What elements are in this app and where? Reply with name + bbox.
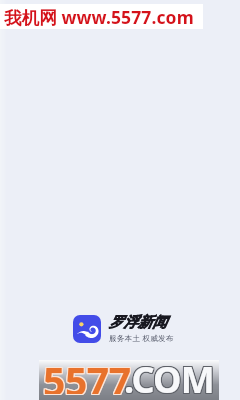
- staticText: .COM: [124, 354, 214, 394]
- staticText: .COM: [123, 354, 213, 394]
- staticText: .COM: [123, 355, 213, 395]
- staticText: .COM: [125, 354, 215, 394]
- staticText: .COM: [124, 356, 214, 396]
- staticText: 5577: [44, 354, 132, 394]
- button[interactable]: 罗浮新闻 app icon: [73, 313, 174, 343]
- staticText: 5577: [42, 354, 130, 394]
- staticText: 5577: [44, 353, 132, 393]
- staticText: .COM: [125, 356, 215, 396]
- staticText: 罗浮新闻: [109, 313, 167, 331]
- staticText: 5577: [43, 355, 131, 395]
- other: 罗浮新闻 app icon: [73, 315, 101, 343]
- staticText: 服务本土 权威发布: [109, 333, 174, 343]
- staticText: 5577: [42, 353, 130, 393]
- button[interactable]: 我机网 www.5577.com: [0, 4, 203, 29]
- staticText: 罗浮新闻: [109, 313, 167, 331]
- staticText: 我机网 www.5577.com: [4, 5, 194, 29]
- staticText: .COM: [124, 355, 214, 395]
- staticText: 5577: [44, 355, 132, 395]
- staticText: 5577: [42, 355, 130, 395]
- staticText: .COM: [125, 355, 215, 395]
- button[interactable]: 5577: [39, 360, 219, 400]
- staticText: 5577: [43, 353, 131, 393]
- staticText: .COM: [123, 356, 213, 396]
- staticText: 5577: [43, 354, 131, 394]
